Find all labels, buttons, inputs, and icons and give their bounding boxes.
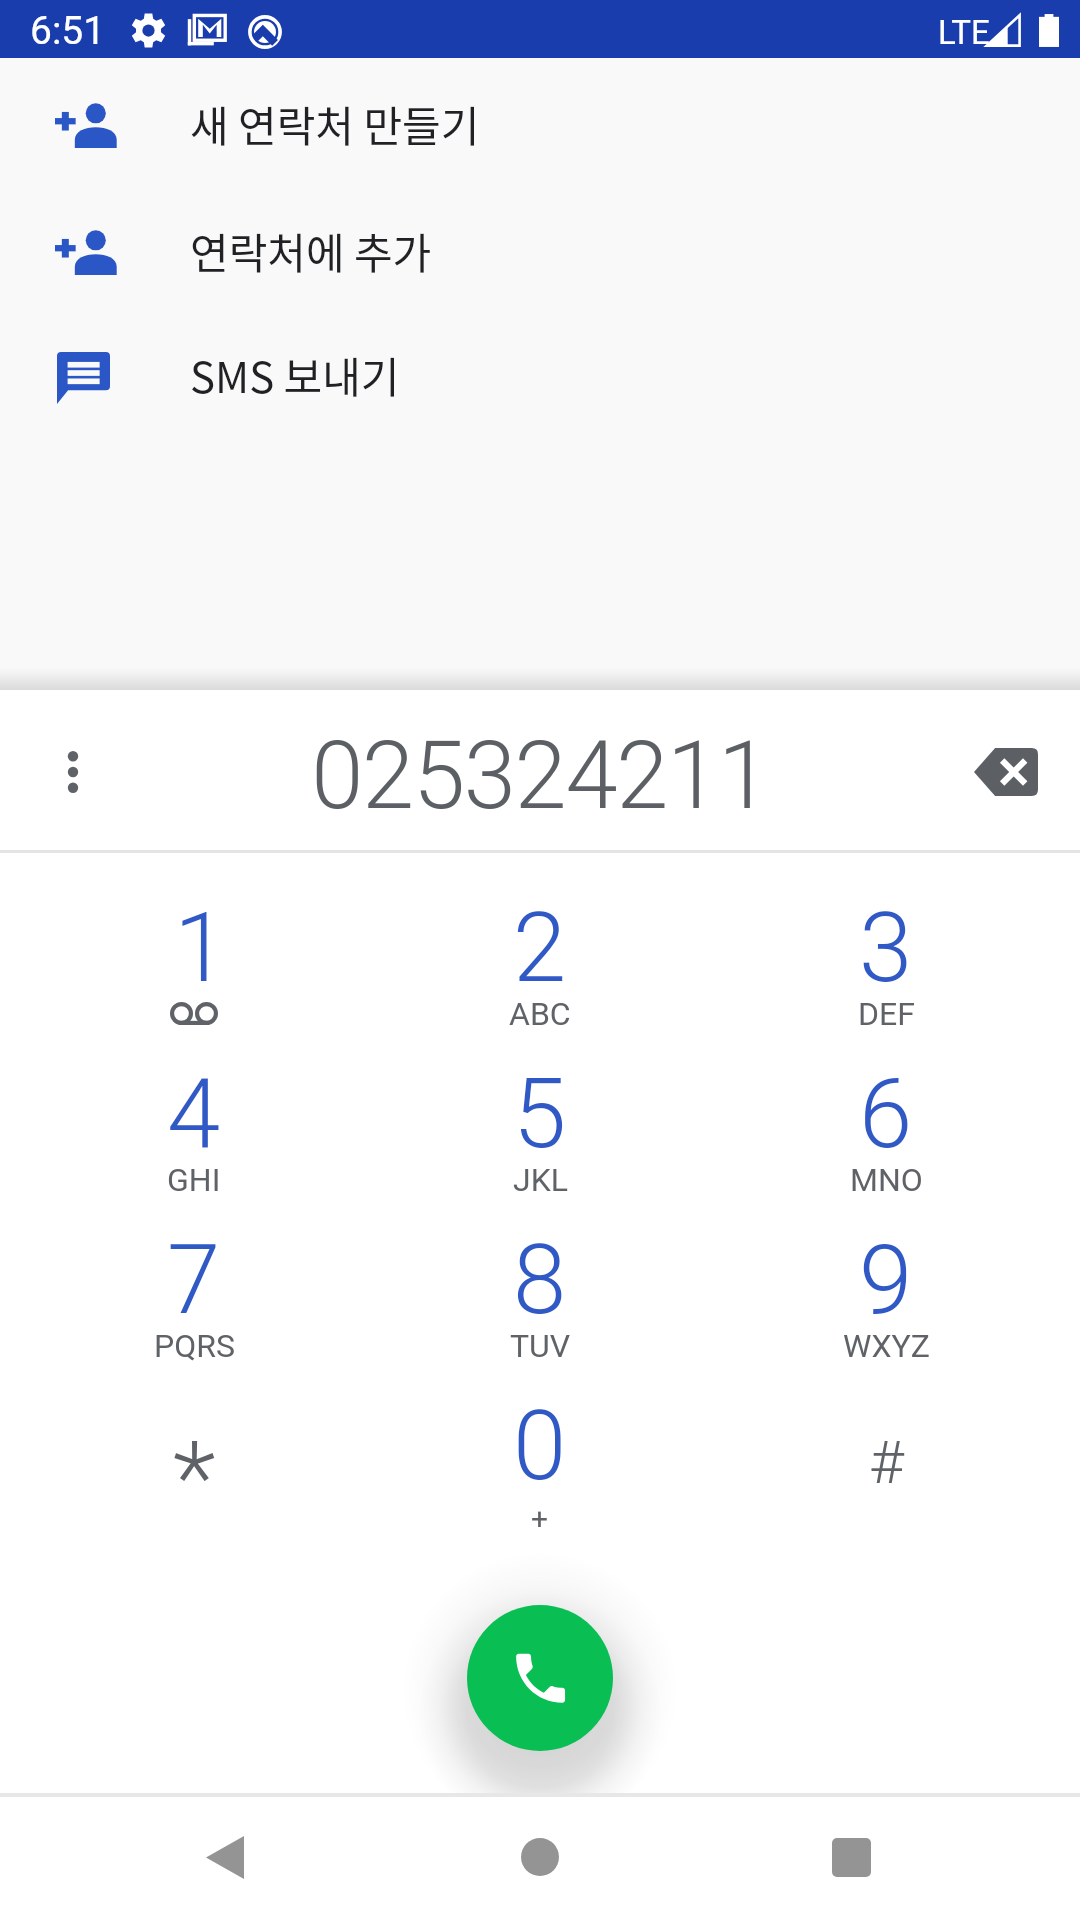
staticText: 3 (859, 892, 913, 1005)
button[interactable]: Back (145, 1797, 305, 1917)
staticText: 2 (513, 892, 567, 1005)
button[interactable]: # (713, 1370, 1059, 1530)
button[interactable]: 2 (367, 872, 713, 1038)
staticText: + (531, 1501, 549, 1536)
button[interactable]: 5 (367, 1038, 713, 1204)
button[interactable]: SMS 보내기 (0, 313, 1080, 439)
button[interactable]: More options (23, 722, 123, 822)
staticText: 새 연락처 만들기 (190, 93, 480, 154)
staticText: LTE (938, 13, 990, 52)
staticText: JKL (513, 1161, 568, 1199)
button[interactable]: Call (467, 1605, 613, 1751)
staticText: 4 (167, 1058, 221, 1171)
staticText: GHI (167, 1161, 221, 1199)
button[interactable]: * (21, 1370, 367, 1530)
staticText: * (173, 1419, 216, 1536)
button[interactable]: 8 (367, 1204, 713, 1370)
staticText: # (869, 1427, 904, 1497)
button[interactable]: 4 (21, 1038, 367, 1204)
button[interactable]: 7 (21, 1204, 367, 1370)
staticText: 5 (513, 1058, 567, 1171)
button[interactable]: 새 연락처 만들기 (0, 62, 1080, 188)
button[interactable]: 3 (713, 872, 1059, 1038)
staticText: 025324211 (311, 721, 769, 831)
button[interactable]: 6 (713, 1038, 1059, 1204)
button[interactable]: 9 (713, 1204, 1059, 1370)
staticText: 0 (513, 1390, 567, 1503)
staticText: TUV (510, 1327, 571, 1365)
button[interactable]: 연락처에 추가 (0, 189, 1080, 315)
staticText: PQRS (154, 1327, 235, 1365)
staticText: WXYZ (843, 1327, 930, 1365)
staticText: 8 (513, 1224, 567, 1337)
staticText: ABC (509, 995, 571, 1033)
staticText: DEF (858, 995, 915, 1033)
button[interactable]: Home (460, 1797, 620, 1917)
staticText: 7 (167, 1224, 221, 1337)
staticText: 9 (859, 1224, 913, 1337)
staticText: 연락처에 추가 (190, 220, 432, 281)
staticText: 6 (859, 1058, 913, 1171)
staticText: 6:51 (30, 8, 106, 54)
staticText: SMS 보내기 (190, 344, 400, 405)
staticText: MNO (850, 1161, 923, 1199)
button[interactable]: 1 (21, 872, 367, 1038)
button[interactable]: Recent apps (771, 1797, 931, 1917)
staticText: 1 (174, 892, 228, 1005)
button[interactable]: Backspace (956, 722, 1056, 822)
button[interactable]: 0 (367, 1370, 713, 1530)
